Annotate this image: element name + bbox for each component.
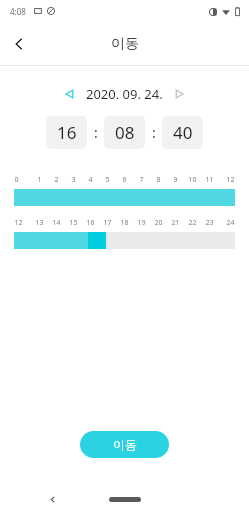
button[interactable]: Previous day: [60, 84, 80, 104]
staticText: 08: [115, 121, 135, 144]
staticText: 이동: [111, 35, 139, 53]
staticText: 16: [57, 121, 77, 144]
staticText: 2020. 09. 24.: [86, 85, 163, 103]
button[interactable]: Home: [109, 497, 141, 502]
staticText: 16: [86, 218, 95, 228]
staticText: 0: [14, 175, 19, 185]
staticText: 19: [137, 218, 146, 228]
staticText: :: [94, 123, 98, 142]
staticText: 3: [71, 175, 76, 185]
staticText: 이동: [113, 437, 137, 452]
staticText: 22: [188, 218, 197, 228]
button[interactable]: 16: [46, 116, 87, 149]
staticText: 15: [69, 218, 78, 228]
button[interactable]: Back: [4, 29, 34, 59]
staticText: 23: [205, 218, 214, 228]
button[interactable]: Next day: [169, 84, 189, 104]
button[interactable]: 08: [104, 116, 145, 149]
staticText: 24: [226, 218, 235, 228]
staticText: 7: [139, 175, 144, 185]
staticText: 12: [14, 218, 23, 228]
staticText: 8: [156, 175, 161, 185]
staticText: 10: [188, 175, 197, 185]
staticText: :: [152, 123, 156, 142]
staticText: 6: [122, 175, 127, 185]
button[interactable]: 40: [162, 116, 203, 149]
button[interactable]: Timeline: [14, 232, 235, 249]
staticText: 20: [154, 218, 163, 228]
staticText: 4:08: [10, 6, 26, 17]
staticText: 13: [35, 218, 44, 228]
staticText: 12: [226, 175, 235, 185]
staticText: 18: [120, 218, 129, 228]
staticText: 40: [173, 121, 193, 144]
button[interactable]: 이동: [80, 431, 169, 458]
staticText: 17: [103, 218, 112, 228]
staticText: 9: [173, 175, 178, 185]
staticText: 5: [105, 175, 110, 185]
staticText: 21: [171, 218, 180, 228]
staticText: 14: [52, 218, 61, 228]
staticText: 2: [54, 175, 59, 185]
staticText: 1: [37, 175, 42, 185]
staticText: 11: [205, 175, 214, 185]
staticText: 4: [88, 175, 93, 185]
button[interactable]: Back: [42, 489, 62, 509]
